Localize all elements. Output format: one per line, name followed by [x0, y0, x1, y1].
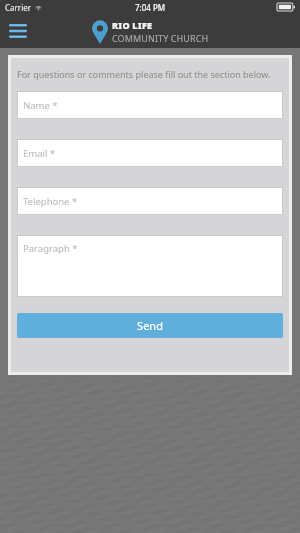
staticText: Name *	[23, 99, 58, 112]
button[interactable]: RIO LIFE	[92, 19, 209, 44]
staticText: Carrier	[5, 2, 32, 13]
button[interactable]: Telephone *	[17, 187, 283, 215]
button[interactable]: Paragraph *	[17, 235, 283, 297]
button[interactable]: Email *	[17, 139, 283, 167]
staticText: Email *	[23, 147, 56, 160]
staticText: 7:04 PM	[135, 2, 166, 13]
staticText: Paragraph *	[23, 242, 78, 255]
button[interactable]: Send	[17, 313, 283, 338]
staticText: Telephone *	[23, 195, 78, 208]
staticText: Send	[137, 318, 163, 333]
staticText: RIO LIFE	[112, 19, 153, 31]
staticText: COMMUNITY CHURCH	[112, 32, 209, 44]
staticText: For questions or comments please fill ou…	[17, 68, 271, 80]
button[interactable]: Name *	[17, 91, 283, 119]
button[interactable]: Open navigation menu	[6, 20, 30, 42]
